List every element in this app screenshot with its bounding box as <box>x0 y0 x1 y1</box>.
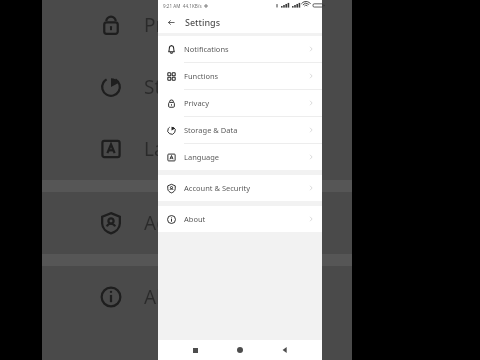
staticText: Storage & Data <box>144 74 280 100</box>
staticText: Storage & Data <box>184 125 238 135</box>
staticText: 9:21 AM 44.1KB/s <box>163 3 202 9</box>
button[interactable]: Notifications <box>158 36 322 62</box>
staticText: Privacy <box>144 12 208 38</box>
staticText: Language <box>184 152 220 162</box>
button[interactable]: Account & Security <box>158 175 322 201</box>
button[interactable]: Language <box>158 144 322 170</box>
staticText: Privacy <box>184 98 210 108</box>
button[interactable]: Back <box>277 342 293 358</box>
button[interactable]: Privacy <box>158 90 322 116</box>
staticText: Settings <box>185 16 221 28</box>
staticText: Account & Security <box>184 183 251 193</box>
button[interactable]: Storage & Data <box>158 117 322 143</box>
staticText: Language <box>144 136 233 162</box>
staticText: About <box>144 284 198 310</box>
staticText: About <box>184 214 206 224</box>
staticText: Account & Security <box>144 210 312 236</box>
button[interactable]: Back <box>165 16 178 29</box>
button[interactable]: About <box>158 206 322 232</box>
button[interactable]: Functions <box>158 63 322 89</box>
button[interactable]: Home <box>232 342 248 358</box>
staticText: Notifications <box>184 44 229 54</box>
staticText: Functions <box>184 71 219 81</box>
button[interactable]: Recent apps <box>187 342 203 358</box>
